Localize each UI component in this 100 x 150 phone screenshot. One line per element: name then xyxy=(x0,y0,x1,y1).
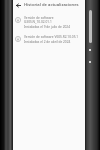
staticText: Instaladas el 9 de julio de 2024 xyxy=(24,25,70,29)
button[interactable]: Atrás xyxy=(13,0,85,10)
button[interactable]: Versión de software G30S.N_10.02.01.1 xyxy=(13,13,85,32)
button[interactable]: Versión de software V60S.R2.10.05.1 xyxy=(13,32,85,47)
staticText: Versión de software G30S.N_10.02.01.1 xyxy=(24,16,82,24)
staticText: Instaladas el 2 de abril de 2024 xyxy=(24,40,71,44)
staticText: Versión de software V60S.R2.10.05.1 xyxy=(24,35,79,39)
staticText: Historial de actualizaciones xyxy=(24,2,79,8)
button[interactable]: Atrás xyxy=(15,2,22,9)
